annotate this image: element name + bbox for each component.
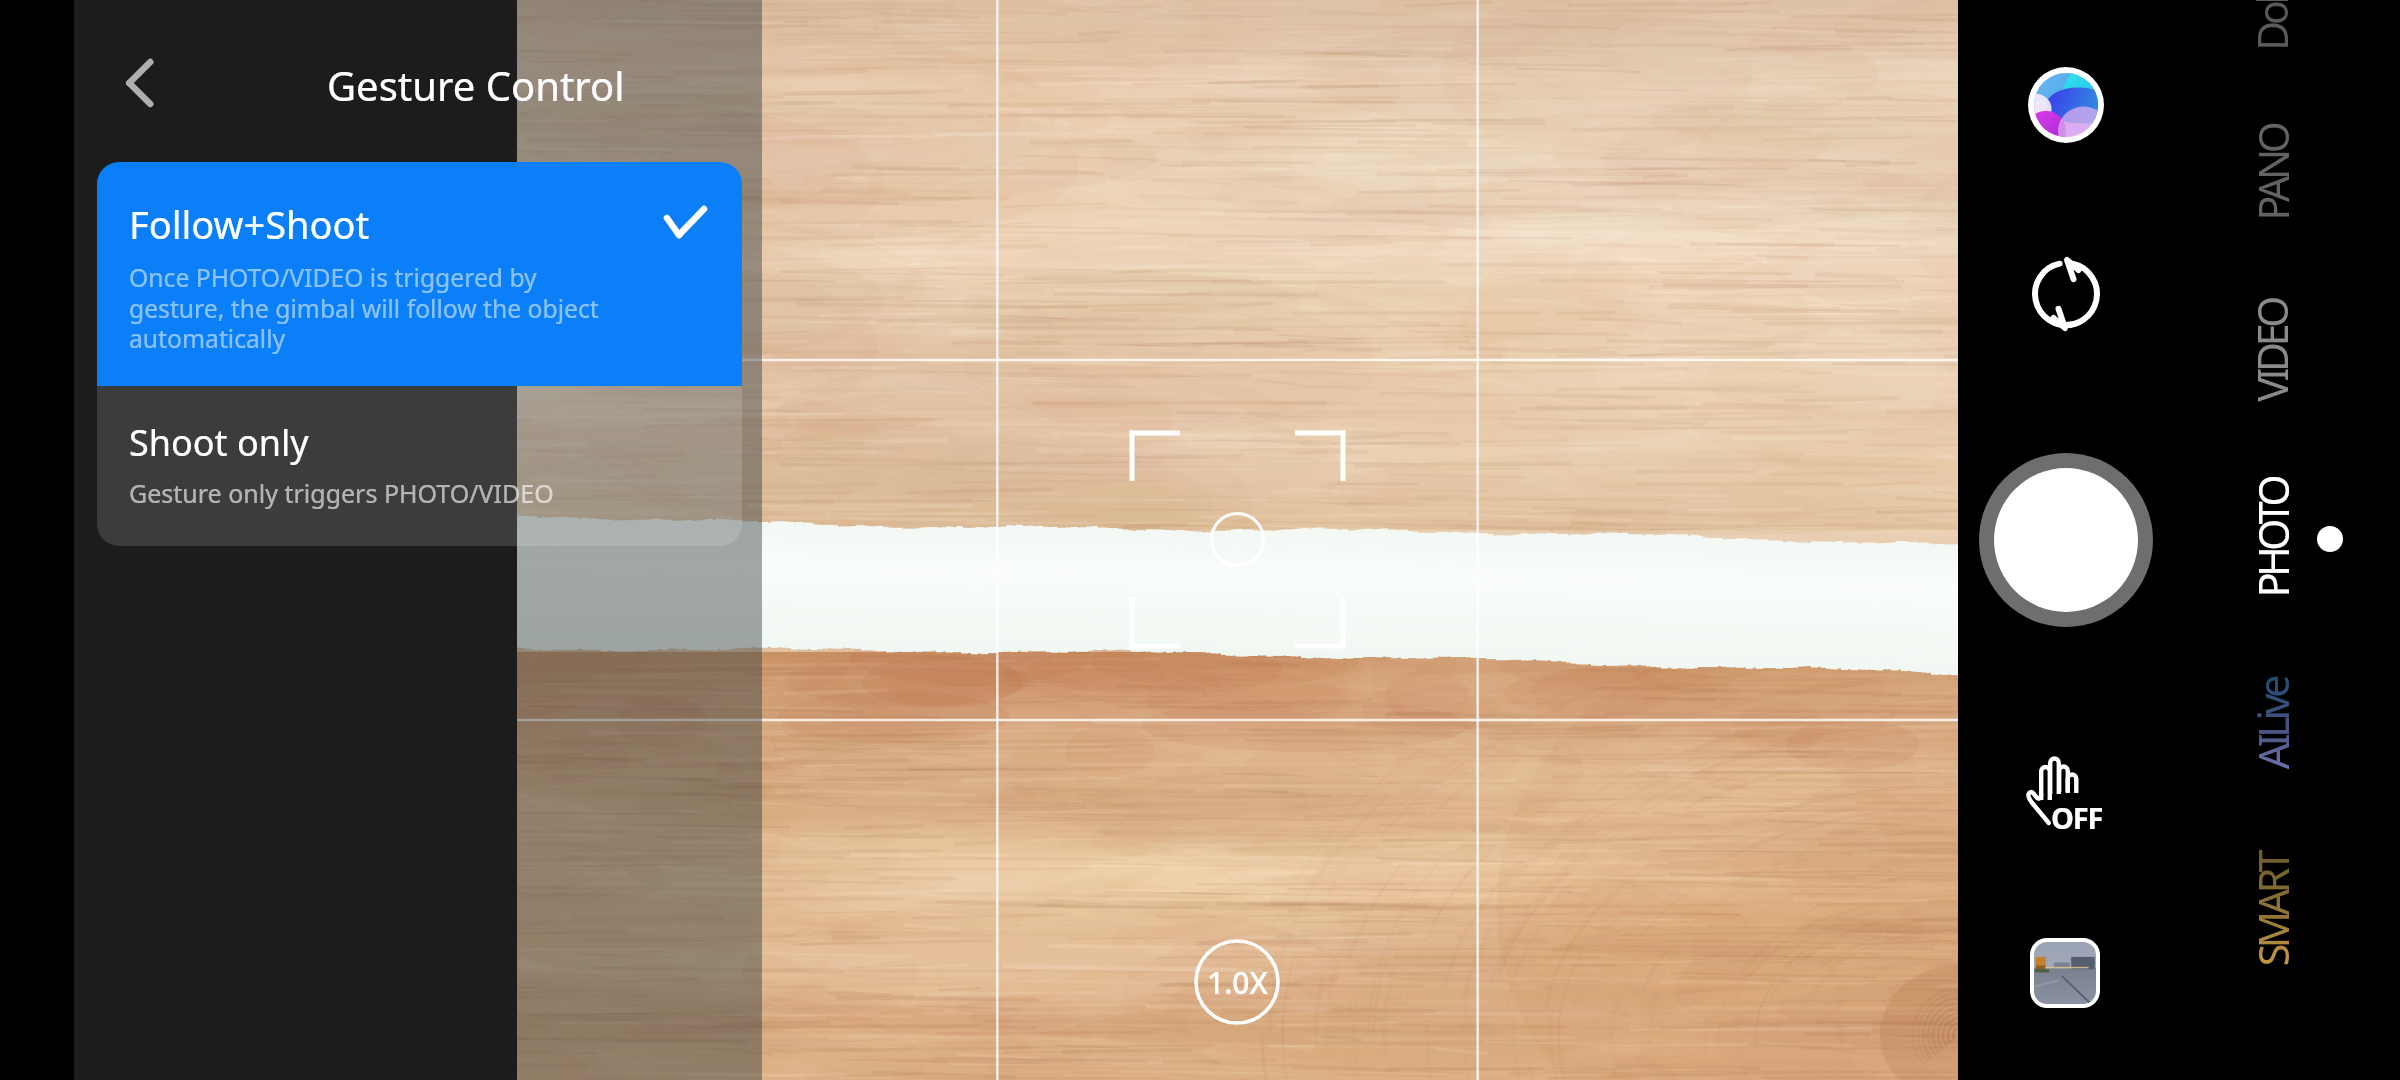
- staticText: Dolly: [2244, 0, 2300, 51]
- button[interactable]: VIDEO: [2212, 261, 2332, 441]
- button[interactable]: Follow+Shoot: [97, 162, 742, 386]
- staticText: Follow+Shoot: [129, 198, 370, 250]
- button[interactable]: Gesture control off: [2016, 742, 2116, 842]
- staticText: 1.0X: [1207, 962, 1268, 1003]
- staticText: SMART: [2244, 853, 2300, 966]
- button[interactable]: Zoom 1.0X: [1194, 939, 1280, 1025]
- button[interactable]: SMART: [2212, 820, 2332, 1000]
- button[interactable]: AILive: [2212, 634, 2332, 814]
- staticText: Once PHOTO/VIDEO is triggered by gesture…: [129, 261, 599, 355]
- button[interactable]: Dolly: [2212, 0, 2332, 103]
- staticText: PANO: [2244, 125, 2300, 220]
- staticText: VIDEO: [2244, 300, 2300, 402]
- button[interactable]: Gallery: [2029, 937, 2101, 1009]
- button[interactable]: PHOTO: [2212, 448, 2332, 628]
- button[interactable]: PANO: [2212, 83, 2332, 263]
- staticText: AILive: [2244, 678, 2300, 769]
- staticText: Shoot only: [129, 418, 309, 467]
- staticText: Gesture only triggers PHOTO/VIDEO: [129, 476, 554, 510]
- button[interactable]: Back: [102, 49, 170, 117]
- button[interactable]: Switch camera: [2016, 244, 2116, 344]
- staticText: Gesture Control: [327, 58, 625, 112]
- staticText: PHOTO: [2244, 478, 2300, 597]
- button[interactable]: AI effects: [2016, 55, 2116, 155]
- staticText: OFF: [2051, 798, 2103, 837]
- button[interactable]: Shoot only: [97, 386, 742, 546]
- button[interactable]: Shutter: [1971, 445, 2161, 635]
